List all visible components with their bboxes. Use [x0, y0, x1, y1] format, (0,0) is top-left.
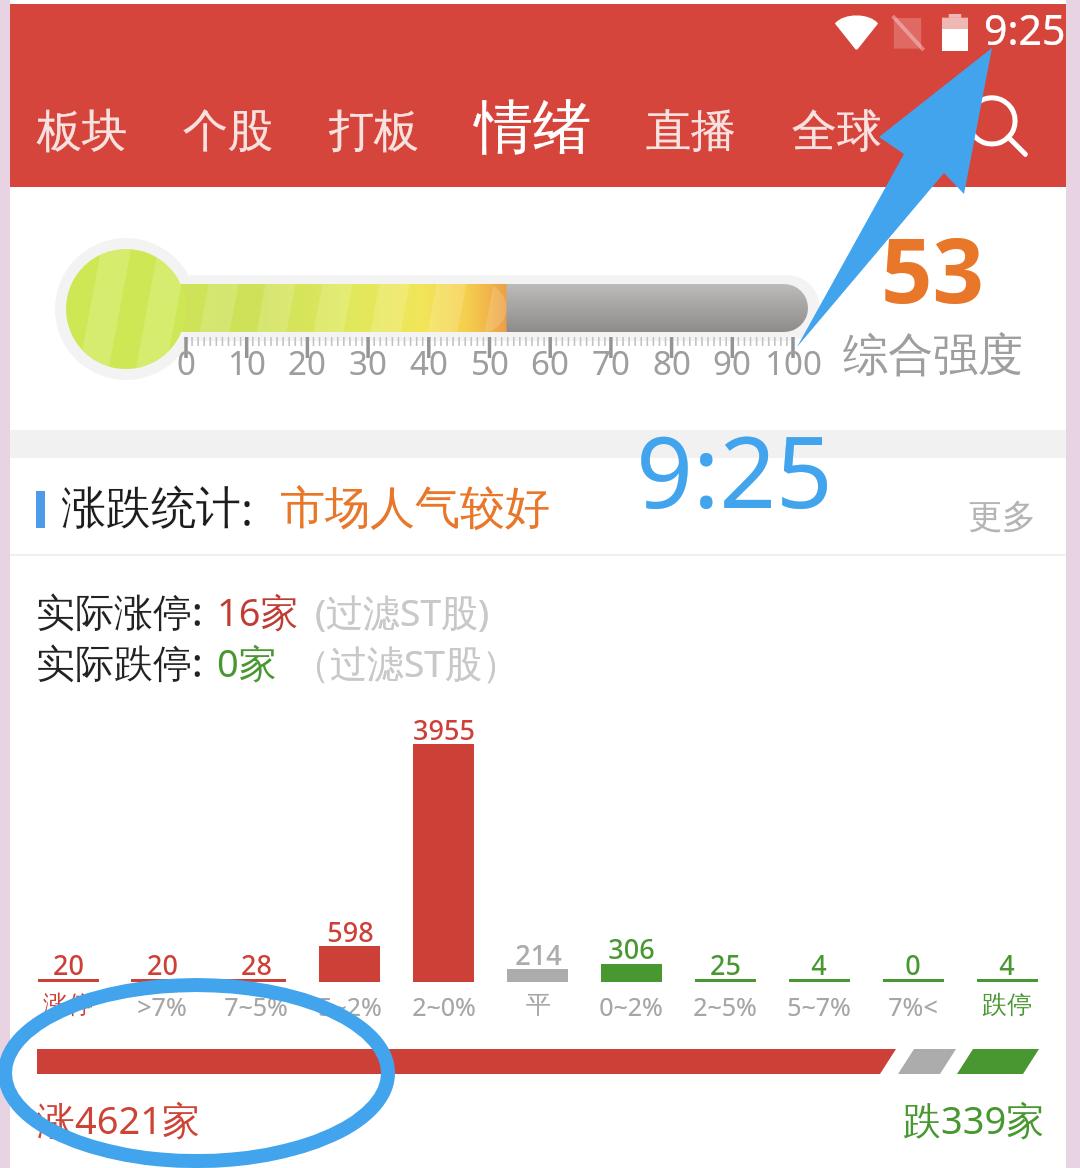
staticText: 5~7% — [787, 989, 851, 1023]
staticText: （过滤ST股） — [293, 637, 519, 688]
staticText: 598 — [327, 913, 374, 950]
staticText: 0~2% — [599, 989, 663, 1023]
staticText: 5~2% — [318, 989, 382, 1023]
staticText: 0 — [905, 946, 921, 983]
button[interactable]: 全球 — [783, 81, 891, 181]
staticText: (过滤ST股) — [315, 586, 490, 637]
staticText: 30 — [349, 340, 387, 385]
staticText: 214 — [515, 936, 562, 973]
button[interactable]: 直播 — [637, 81, 745, 181]
staticText: : — [241, 478, 254, 539]
staticText: 25 — [710, 946, 741, 983]
staticText: 综合强度 — [843, 327, 1023, 384]
button[interactable]: 个股 — [174, 81, 282, 181]
staticText: 0 — [177, 340, 196, 385]
button[interactable]: 板块 — [28, 81, 136, 181]
staticText: 9:25 — [636, 402, 833, 537]
staticText: 20 — [147, 946, 178, 983]
staticText: 9:25 — [984, 1, 1066, 57]
staticText: >7% — [137, 989, 187, 1023]
staticText: 10 — [228, 340, 266, 385]
staticText: 个股 — [183, 103, 273, 160]
staticText: 7%< — [888, 989, 938, 1023]
staticText: 20 — [288, 340, 326, 385]
staticText: 更多 — [968, 495, 1036, 538]
staticText: 40 — [410, 340, 448, 385]
staticText: 涨4621家 — [37, 1093, 200, 1145]
staticText: 实际跌停: — [36, 635, 203, 688]
staticText: 实际涨停: — [36, 584, 203, 637]
button[interactable]: 打板 — [320, 81, 428, 181]
staticText: 7~5% — [224, 989, 288, 1023]
staticText: 100 — [765, 340, 822, 385]
staticText: 2~5% — [693, 989, 757, 1023]
staticText: 3955 — [413, 711, 475, 748]
staticText: 情绪 — [475, 91, 591, 164]
staticText: 涨停 — [43, 989, 93, 1020]
staticText: 跌停 — [982, 989, 1032, 1020]
staticText: 50 — [471, 340, 509, 385]
staticText: 4 — [811, 946, 827, 983]
staticText: 板块 — [37, 103, 127, 160]
staticText: 70 — [592, 340, 630, 385]
staticText: 全球 — [792, 103, 882, 160]
staticText: 53 — [881, 207, 984, 330]
staticText: 跌339家 — [903, 1093, 1045, 1145]
button[interactable]: 情绪 — [467, 75, 599, 179]
staticText: 90 — [713, 340, 751, 385]
button[interactable]: Search — [946, 78, 1050, 182]
staticText: 80 — [653, 340, 691, 385]
staticText: 306 — [608, 930, 655, 967]
staticText: 4 — [999, 946, 1015, 983]
staticText: 60 — [531, 340, 569, 385]
staticText: 打板 — [329, 103, 419, 160]
staticText: 平 — [526, 989, 551, 1020]
staticText: 直播 — [646, 103, 736, 160]
staticText: 2~0% — [412, 989, 476, 1023]
staticText: 0家 — [217, 636, 277, 688]
staticText: 28 — [241, 946, 272, 983]
staticText: 16家 — [217, 585, 299, 637]
button[interactable] — [10, 458, 1066, 554]
staticText: 涨跌统计 — [61, 480, 241, 537]
staticText: 市场人气较好 — [280, 480, 550, 537]
staticText: 20 — [53, 946, 84, 983]
